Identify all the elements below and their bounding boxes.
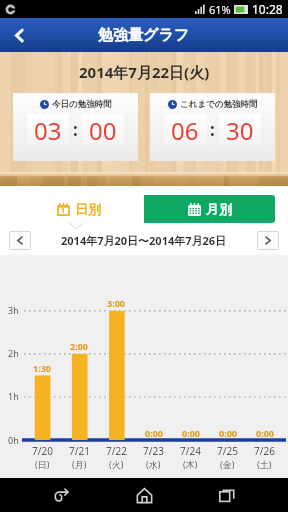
staticText: 2014年7月20日〜2014年7月26日	[61, 233, 227, 248]
staticText: (水)	[146, 458, 161, 470]
staticText: :	[73, 118, 78, 141]
staticText: :	[210, 118, 215, 141]
button[interactable]: Next week	[257, 231, 279, 250]
staticText: (土)	[257, 458, 272, 470]
staticText: 3:00	[107, 297, 125, 309]
staticText: 0h	[8, 434, 19, 446]
staticText: 7/23	[143, 444, 164, 458]
button[interactable]: Back	[0, 18, 38, 52]
staticText: 月別	[206, 201, 232, 217]
button[interactable]: 今日の勉強時間	[13, 93, 138, 161]
button[interactable]: これまでの勉強時間	[150, 93, 275, 161]
staticText: 7/20	[32, 444, 53, 458]
staticText: 勉強量グラフ	[98, 26, 190, 45]
staticText: 1:30	[33, 362, 51, 374]
staticText: 0:00	[182, 427, 200, 439]
staticText: 00	[89, 114, 117, 145]
staticText: (日)	[35, 458, 50, 470]
staticText: (金)	[220, 458, 235, 470]
staticText: (木)	[183, 458, 198, 470]
staticText: これまでの勉強時間	[180, 99, 258, 110]
button[interactable]: Home	[122, 478, 166, 512]
button[interactable]: Previous week	[9, 231, 31, 250]
staticText: 7/26	[254, 444, 275, 458]
staticText: 7/25	[217, 444, 238, 458]
staticText: 0:00	[219, 427, 237, 439]
staticText: 30	[226, 114, 254, 145]
staticText: (火)	[109, 458, 124, 470]
button[interactable]: Recents	[205, 478, 249, 512]
staticText: 2014年7月22日(火)	[79, 62, 210, 82]
staticText: 1	[61, 206, 66, 216]
staticText: 61%	[209, 2, 231, 17]
staticText: 今日の勉強時間	[52, 99, 112, 110]
button[interactable]: 月別	[144, 195, 275, 223]
staticText: 1h	[8, 390, 19, 402]
staticText: 7/24	[180, 444, 201, 458]
staticText: 0:00	[256, 427, 274, 439]
staticText: (月)	[72, 458, 87, 470]
staticText: 10:28	[252, 1, 283, 17]
staticText: 2:00	[70, 340, 88, 352]
button[interactable]: 1	[13, 195, 144, 223]
staticText: 3h	[8, 304, 19, 316]
staticText: 2h	[8, 347, 19, 359]
button[interactable]: Back	[39, 478, 83, 512]
staticText: 0:00	[145, 427, 163, 439]
staticText: 06	[171, 114, 199, 145]
staticText: 03	[34, 114, 62, 145]
staticText: 7/22	[106, 444, 127, 458]
staticText: 日別	[75, 201, 101, 217]
staticText: 7/21	[69, 444, 90, 458]
